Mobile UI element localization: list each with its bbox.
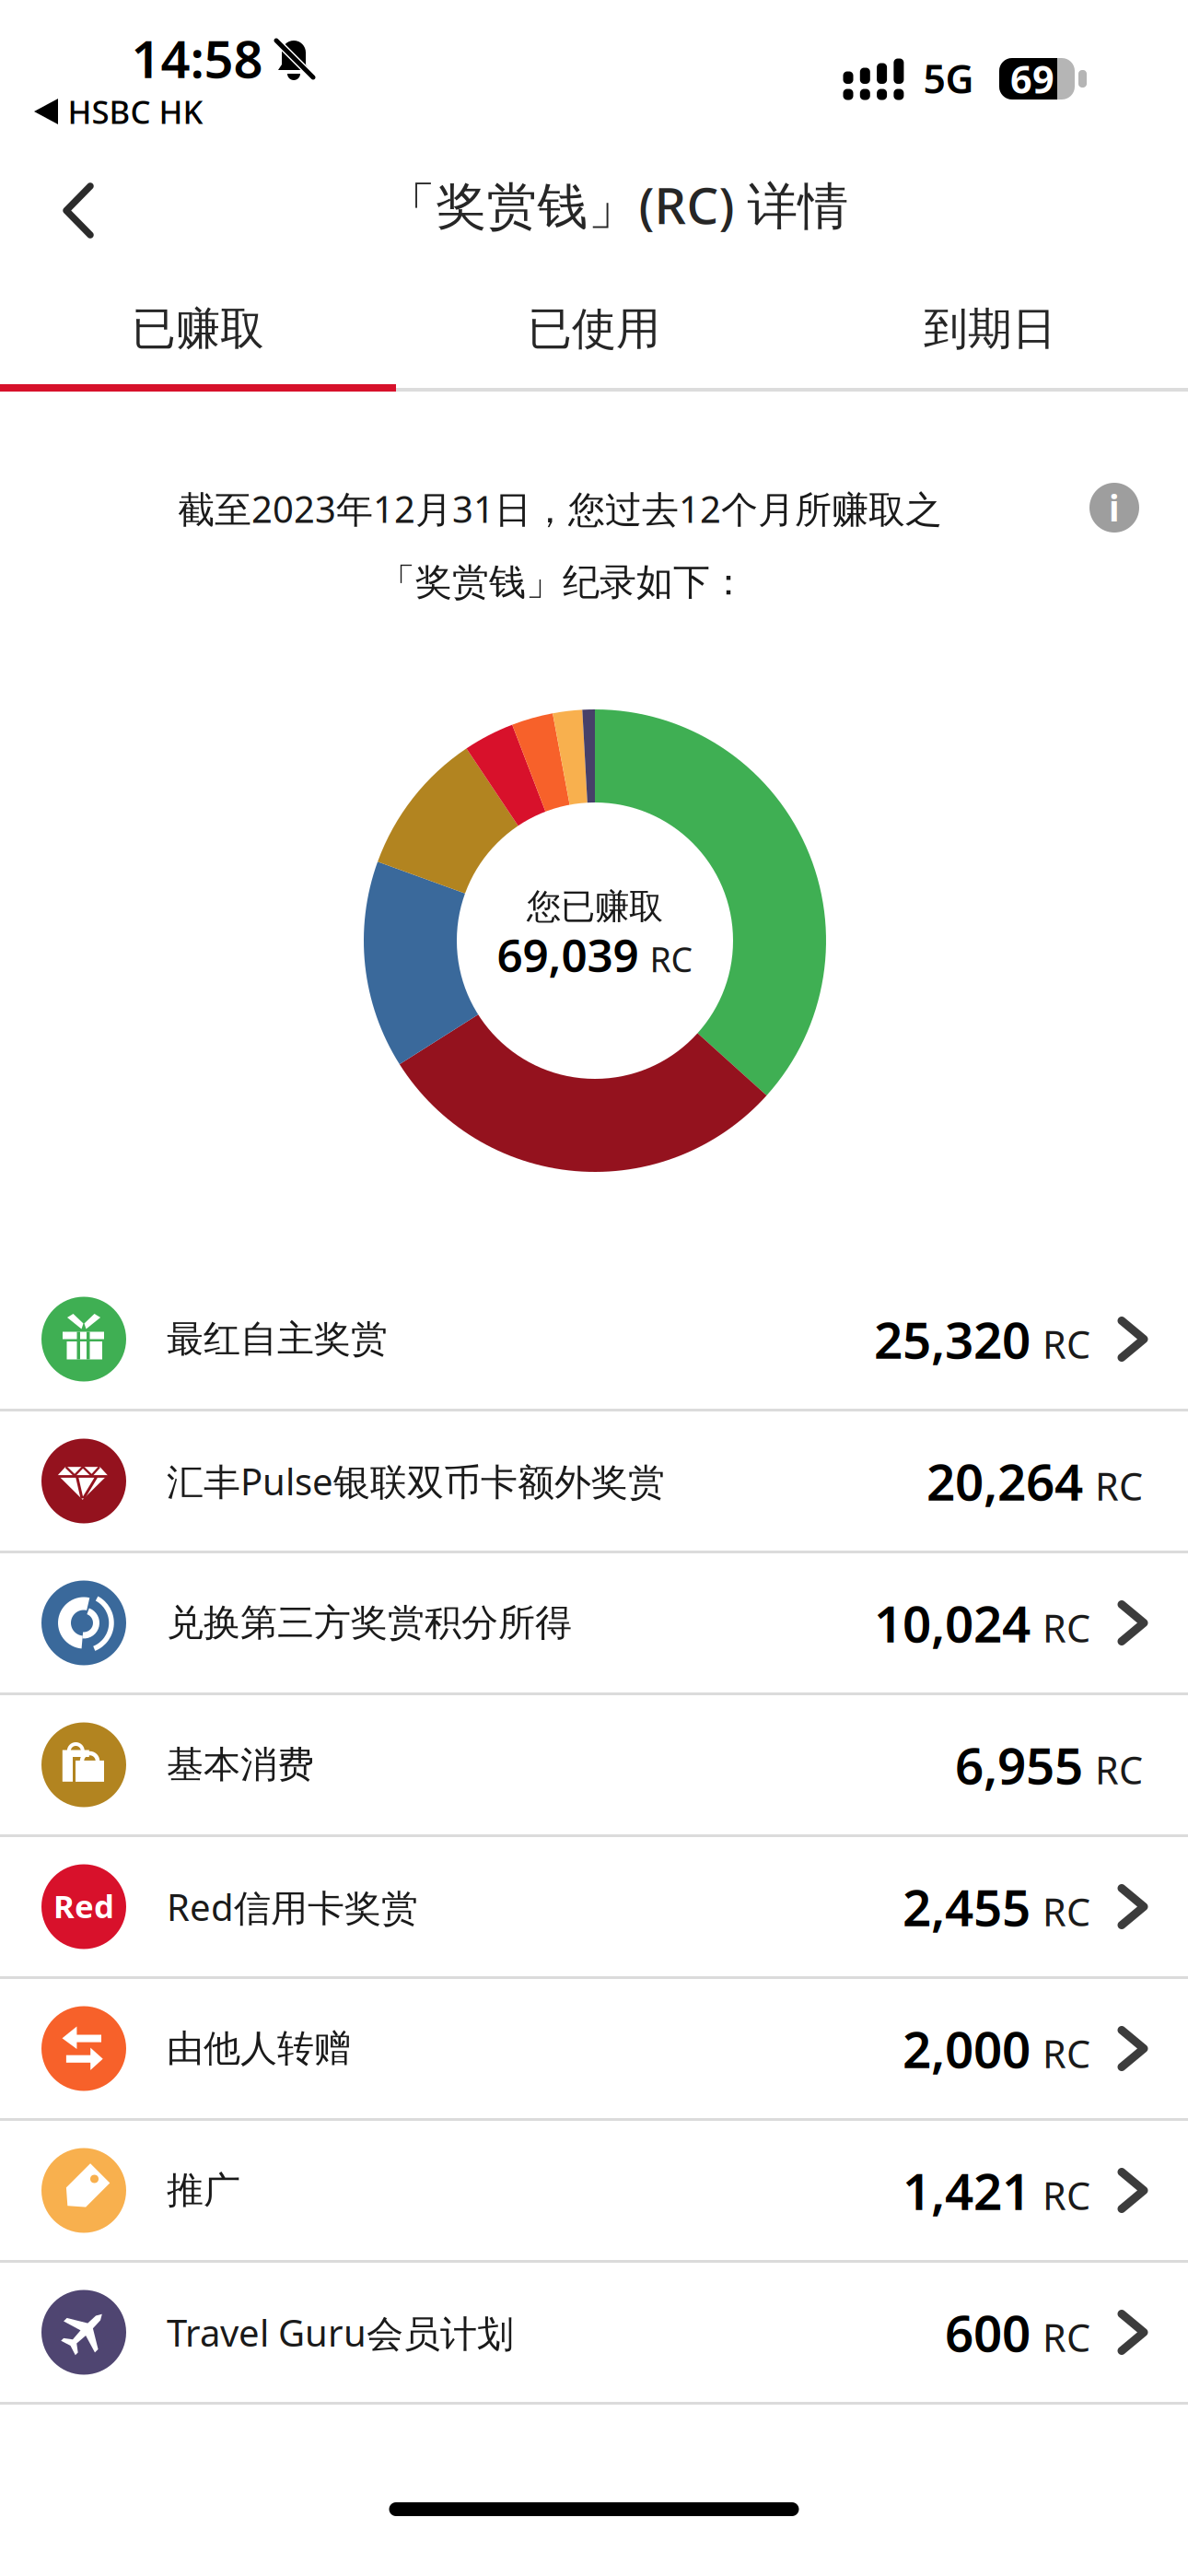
staticText: RC [1042, 2312, 1090, 2362]
staticText: 20,264 [926, 1448, 1083, 1514]
staticText: 14:58 [131, 24, 263, 92]
staticText: i [1109, 484, 1120, 531]
staticText: 您已赚取 [527, 885, 663, 928]
staticText: RC [1042, 1886, 1090, 1937]
staticText: 截至2023年12月31日，您过去12个月所赚取之 [178, 484, 942, 533]
button[interactable]: 兑换第三方奖赏积分所得 [0, 1553, 1188, 1692]
staticText: RC [1042, 2028, 1090, 2079]
staticText: RC [1042, 1319, 1090, 1369]
staticText: RC [1042, 1602, 1090, 1653]
staticText: Red [53, 1885, 114, 1927]
button[interactable]: Back [63, 183, 103, 239]
staticText: HSBC HK [68, 90, 203, 133]
staticText: Travel Guru会员计划 [167, 2308, 514, 2357]
staticText: 「奖赏钱」(RC) 详情 [385, 171, 849, 238]
staticText: 6,955 [955, 1731, 1083, 1798]
button[interactable]: 最红自主奖赏 [0, 1270, 1188, 1409]
staticText: 到期日 [924, 302, 1056, 356]
staticText: 最红自主奖赏 [167, 1316, 388, 1362]
staticText: 兑换第三方奖赏积分所得 [167, 1600, 572, 1645]
staticText: 由他人转赠 [167, 2026, 351, 2071]
staticText: 2,000 [903, 2015, 1031, 2082]
staticText: 2,455 [903, 1873, 1031, 1940]
staticText: 1,421 [903, 2157, 1031, 2224]
button[interactable]: 已使用 [396, 278, 792, 380]
button[interactable]: Travel Guru会员计划 [0, 2263, 1188, 2402]
staticText: Red信用卡奖赏 [167, 1882, 418, 1931]
staticText: 已使用 [528, 302, 660, 356]
staticText: 「奖赏钱」纪录如下： [379, 560, 747, 605]
staticText: RC [1095, 1744, 1143, 1795]
staticText: 已赚取 [132, 302, 264, 356]
button[interactable]: 到期日 [792, 278, 1188, 380]
staticText: 600 [945, 2299, 1031, 2366]
staticText: 推广 [167, 2168, 240, 2213]
button[interactable]: Info [1089, 483, 1139, 533]
staticText: RC [1042, 2170, 1090, 2220]
staticText: 基本消费 [167, 1742, 314, 1787]
staticText: RC [650, 936, 693, 982]
button[interactable]: 由他人转赠 [0, 1979, 1188, 2118]
staticText: 69,039 [497, 924, 639, 985]
staticText: 69 [1010, 54, 1054, 104]
button[interactable]: 已赚取 [0, 278, 396, 380]
button[interactable]: 推广 [0, 2121, 1188, 2260]
staticText: RC [1095, 1460, 1143, 1511]
button[interactable]: Red [0, 1837, 1188, 1976]
button[interactable]: 汇丰Pulse银联双币卡额外奖赏 [0, 1411, 1188, 1551]
staticText: 汇丰Pulse银联双币卡额外奖赏 [167, 1457, 665, 1505]
staticText: 5G [923, 52, 974, 104]
staticText: 25,320 [874, 1306, 1031, 1373]
button[interactable]: 基本消费 [0, 1695, 1188, 1834]
staticText: 10,024 [874, 1589, 1031, 1656]
